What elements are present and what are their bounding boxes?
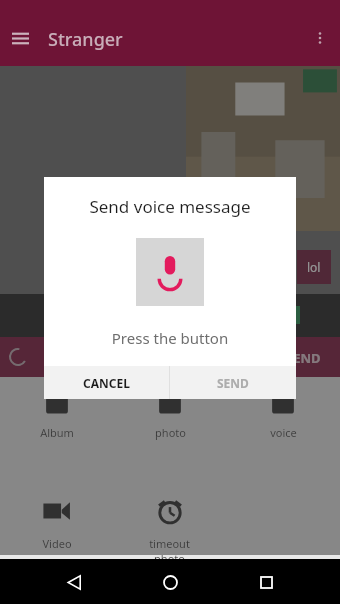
button[interactable]: Home bbox=[148, 560, 192, 604]
button[interactable]: SEND bbox=[170, 366, 296, 399]
staticText: SEND bbox=[286, 349, 321, 367]
staticText: Stranger bbox=[48, 27, 123, 52]
button[interactable]: voice bbox=[226, 383, 339, 440]
button[interactable]: Back bbox=[52, 560, 96, 604]
staticText: Send voice message bbox=[44, 195, 296, 218]
staticText: Video bbox=[42, 536, 72, 551]
button[interactable]: Recent apps bbox=[244, 560, 288, 604]
staticText: SEND bbox=[217, 375, 249, 391]
staticText: Album bbox=[40, 425, 74, 440]
staticText: photo bbox=[155, 425, 186, 440]
staticText: Press the button bbox=[44, 328, 296, 348]
button[interactable]: photo bbox=[113, 383, 226, 440]
staticText: timeout photo bbox=[149, 536, 190, 566]
staticText: lol bbox=[307, 259, 321, 275]
button[interactable]: More options bbox=[300, 18, 340, 58]
button[interactable]: Open navigation menu bbox=[0, 18, 40, 58]
button[interactable]: CANCEL bbox=[44, 366, 169, 399]
staticText: voice bbox=[270, 425, 297, 440]
staticText: CANCEL bbox=[83, 375, 130, 391]
button[interactable]: timeout photo bbox=[113, 494, 226, 566]
button[interactable]: Record voice message bbox=[136, 238, 204, 306]
button[interactable]: Album bbox=[0, 383, 113, 440]
button[interactable]: Video bbox=[0, 494, 113, 551]
